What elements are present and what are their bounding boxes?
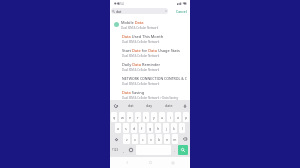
staticText: Dual SIM & Cellular Network (122, 68, 160, 72)
staticText: day (146, 103, 153, 108)
staticText: r (137, 115, 139, 120)
staticText: c (142, 137, 144, 142)
staticText: b (158, 137, 161, 142)
staticText: n (166, 137, 169, 142)
staticText: w (121, 115, 124, 120)
staticText: q (113, 115, 116, 120)
staticText: j (166, 126, 167, 131)
staticText: dat (128, 103, 134, 108)
button[interactable]: Recents (168, 158, 177, 167)
staticText: s (125, 126, 127, 131)
staticText: i (170, 115, 171, 120)
button[interactable]: Data Saving (110, 88, 190, 102)
staticText: Data Used This Month (122, 34, 164, 39)
staticText: t (145, 115, 147, 120)
staticText: f (141, 126, 143, 131)
button[interactable]: j (163, 123, 169, 133)
button[interactable]: Shift (111, 134, 121, 144)
button[interactable]: Cancel (176, 9, 187, 14)
button[interactable]: Data Used This Month (110, 32, 190, 46)
staticText: Cancel (176, 9, 187, 14)
staticText: Daily Data Reminder (122, 62, 161, 67)
button[interactable]: n (164, 134, 170, 144)
button[interactable]: dat (127, 103, 135, 108)
button[interactable]: c (140, 134, 146, 144)
staticText: Dual SIM & Cellular Network (122, 40, 160, 44)
staticText: Data Saving (122, 90, 145, 95)
button[interactable]: dat (111, 8, 168, 14)
button[interactable]: e (127, 112, 133, 122)
staticText: Dual SIM & Cellular Network (122, 54, 160, 58)
staticText: Dual SIM & Cellular Network (122, 82, 160, 86)
button[interactable]: f (139, 123, 145, 133)
button[interactable]: Home (146, 158, 155, 167)
staticText: ?123 (112, 148, 119, 152)
staticText: , (123, 148, 124, 153)
button[interactable]: k (171, 123, 177, 133)
staticText: u (161, 115, 164, 120)
button[interactable]: l (179, 123, 185, 133)
button[interactable]: u (159, 112, 165, 122)
button[interactable]: Google (112, 102, 119, 109)
staticText: Dual SIM & Cellular Network (121, 26, 159, 30)
button[interactable]: i (167, 112, 173, 122)
button[interactable]: x (132, 134, 138, 144)
button[interactable]: day (145, 103, 154, 108)
staticText: e (129, 115, 132, 120)
button[interactable]: Daily Data Reminder (110, 60, 190, 74)
staticText: l (182, 126, 183, 131)
staticText: Mobile Data (121, 20, 144, 25)
button[interactable]: Mobile Data (110, 18, 190, 32)
button[interactable]: r (135, 112, 141, 122)
button[interactable]: o (175, 112, 181, 122)
button[interactable]: Voice input (181, 102, 188, 109)
button[interactable]: Emoji (127, 145, 134, 155)
button[interactable]: Backspace (180, 134, 189, 144)
button[interactable]: h (155, 123, 161, 133)
button[interactable]: q (111, 112, 117, 122)
staticText: k (173, 126, 175, 131)
staticText: m (173, 137, 177, 142)
button[interactable]: z (123, 134, 130, 144)
button[interactable]: d (131, 123, 137, 133)
staticText: y (153, 115, 155, 120)
button[interactable]: v (148, 134, 154, 144)
staticText: NETWORK CONNECTION CONTROL & C (122, 76, 188, 81)
staticText: date (165, 103, 173, 108)
button[interactable]: date (164, 103, 174, 108)
button[interactable]: ?123 (111, 145, 119, 155)
button[interactable]: . (173, 145, 176, 155)
staticText: g (149, 126, 152, 131)
button[interactable]: Search (178, 145, 188, 155)
button[interactable]: y (151, 112, 157, 122)
button[interactable]: t (143, 112, 149, 122)
button[interactable]: a (115, 123, 121, 133)
staticText: 4:54 (118, 2, 124, 6)
button[interactable]: b (156, 134, 162, 144)
staticText: d (133, 126, 136, 131)
button[interactable]: Start Date for Data Usage Stats (110, 46, 190, 60)
staticText: Start Date for Data Usage Stats (122, 48, 180, 53)
staticText: o (177, 115, 180, 120)
button[interactable]: m (172, 134, 178, 144)
staticText: z (126, 137, 128, 142)
staticText: v (150, 137, 152, 142)
button[interactable]: Back (123, 158, 132, 167)
button[interactable]: p (183, 112, 189, 122)
staticText: x (134, 137, 136, 142)
button[interactable]: w (119, 112, 125, 122)
staticText: h (157, 126, 160, 131)
staticText: dat (116, 9, 122, 14)
button[interactable]: s (123, 123, 129, 133)
button[interactable]: NETWORK CONNECTION CONTROL & C (110, 74, 190, 88)
button[interactable]: , (121, 145, 125, 155)
button[interactable]: g (147, 123, 153, 133)
staticText: a (117, 126, 120, 131)
staticText: Dual SIM & Cellular Network > Data Savin… (122, 96, 178, 100)
staticText: p (185, 115, 188, 120)
staticText: . (174, 148, 175, 153)
